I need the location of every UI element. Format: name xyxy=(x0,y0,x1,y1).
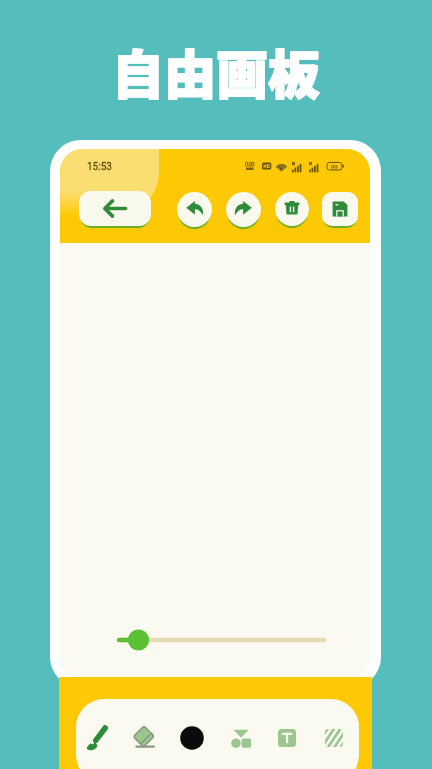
button[interactable]: Eraser xyxy=(127,721,161,755)
button[interactable]: Redo xyxy=(226,192,261,227)
button[interactable]: Undo xyxy=(177,192,212,227)
button[interactable]: Brush size xyxy=(117,628,326,652)
staticText: 自由画板 xyxy=(112,34,321,109)
button[interactable]: Back xyxy=(79,191,151,226)
button[interactable]: Color xyxy=(175,721,209,755)
button[interactable]: Delete xyxy=(275,192,309,226)
button[interactable]: Fill pattern xyxy=(317,721,351,755)
staticText: 99 xyxy=(331,163,338,170)
button[interactable]: Save xyxy=(322,192,358,226)
button[interactable]: Brush xyxy=(80,721,114,755)
button[interactable]: Shapes xyxy=(224,721,258,755)
button[interactable]: Text xyxy=(270,721,304,755)
staticText: 15:53 xyxy=(87,161,112,173)
staticText: 自由画板 xyxy=(112,34,321,109)
